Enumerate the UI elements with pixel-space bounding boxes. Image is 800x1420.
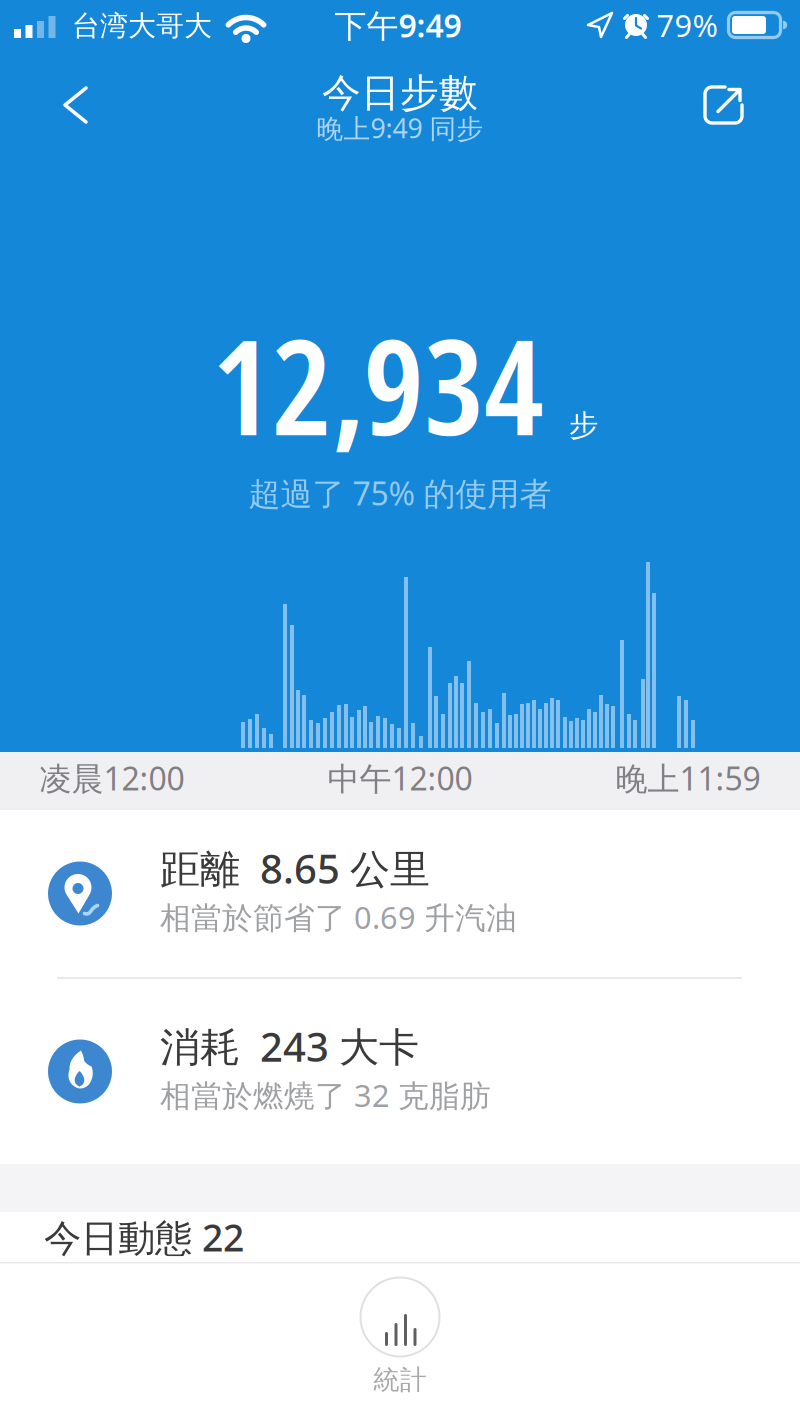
staticText: 今日步數 <box>322 69 478 117</box>
staticText: 79% <box>656 5 717 45</box>
staticText: 消耗 243 大卡 <box>160 1020 419 1073</box>
staticText: 距離 8.65 公里 <box>160 842 430 895</box>
button[interactable]: 距離 8.65 公里 <box>0 810 800 977</box>
staticText: 凌晨12:00 <box>39 757 184 799</box>
staticText: 相當於燃燒了 32 克脂肪 <box>160 1075 491 1115</box>
staticText: 晚上11:59 <box>615 757 760 799</box>
staticText: 今日動態 22 <box>44 1212 244 1262</box>
staticText: 下午9:49 <box>334 4 461 46</box>
button[interactable] <box>693 75 753 135</box>
staticText: 超過了 75% 的使用者 <box>248 472 551 514</box>
staticText: 晚上9:49 同步 <box>316 110 483 146</box>
staticText: 統計 <box>373 1363 427 1396</box>
staticText: 相當於節省了 0.69 升汽油 <box>160 897 517 937</box>
button[interactable] <box>46 75 106 135</box>
staticText: 12,934 <box>212 294 544 474</box>
staticText: 步 <box>569 407 598 443</box>
staticText: 中午12:00 <box>327 757 472 799</box>
staticText: 台湾大哥大 <box>72 9 212 43</box>
button[interactable]: 消耗 243 大卡 <box>0 979 800 1164</box>
button[interactable]: 統計 <box>360 1263 439 1396</box>
